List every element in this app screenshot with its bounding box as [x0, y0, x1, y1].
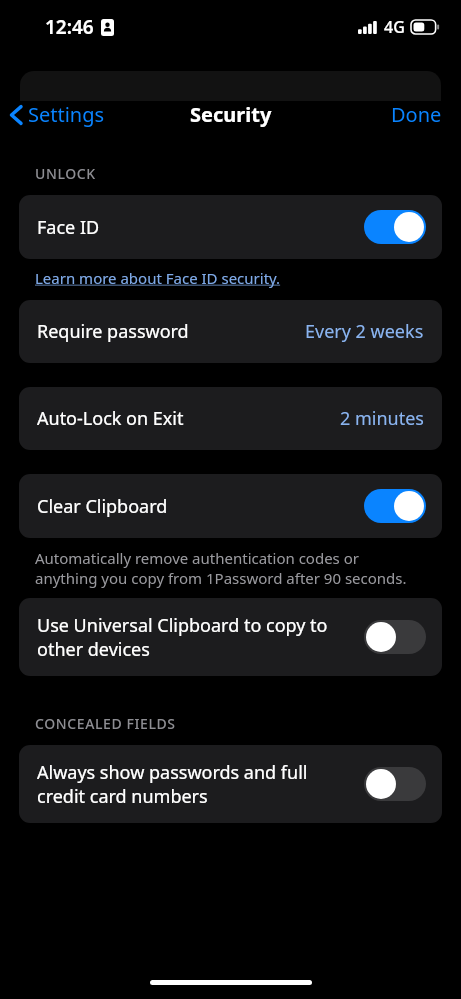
staticText: UNLOCK — [35, 164, 96, 183]
other: Toggle off — [364, 620, 426, 654]
staticText: Auto-Lock on Exit — [37, 406, 184, 431]
staticText: Settings — [28, 101, 105, 128]
staticText: 2 minutes — [340, 406, 424, 431]
other: Toggle on — [364, 489, 426, 523]
staticText: Always show passwords and full credit ca… — [37, 760, 354, 808]
button[interactable]: Auto-Lock on Exit — [19, 387, 442, 450]
staticText: Require password — [37, 319, 189, 344]
button[interactable]: Use Universal Clipboard to copy to other… — [19, 598, 442, 676]
staticText: Automatically remove authentication code… — [35, 548, 421, 588]
button[interactable]: Learn more about Face ID security. — [35, 268, 281, 288]
other: Toggle on — [364, 210, 426, 244]
staticText: Clear Clipboard — [37, 494, 354, 519]
button[interactable]: Always show passwords and full credit ca… — [19, 745, 442, 823]
button[interactable]: Face ID — [19, 195, 442, 259]
staticText: Every 2 weeks — [305, 319, 424, 344]
staticText: 12:46 — [45, 14, 94, 40]
staticText: Security — [190, 101, 272, 128]
other: Toggle off — [364, 767, 426, 801]
button[interactable]: Clear Clipboard — [19, 474, 442, 538]
staticText: Face ID — [37, 215, 354, 240]
staticText: Use Universal Clipboard to copy to other… — [37, 613, 354, 661]
button[interactable]: Settings — [0, 97, 115, 132]
button[interactable]: Done — [379, 95, 461, 134]
button[interactable]: Require password — [19, 300, 442, 363]
staticText: 4G — [384, 16, 405, 38]
staticText: CONCEALED FIELDS — [35, 714, 176, 733]
